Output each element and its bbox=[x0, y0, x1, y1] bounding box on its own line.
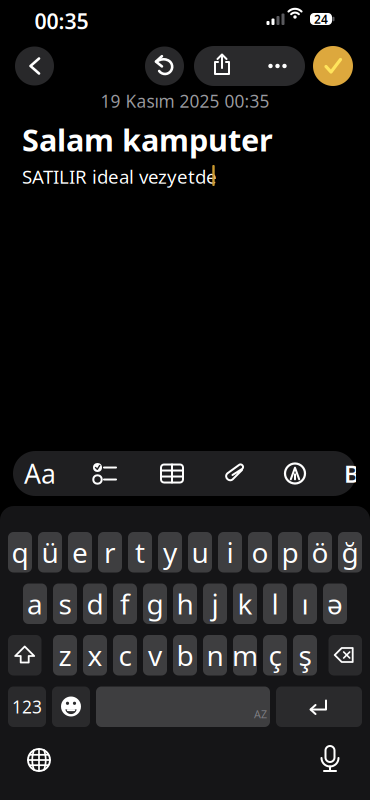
staticText: i bbox=[226, 534, 233, 571]
staticText: p bbox=[281, 534, 298, 571]
button[interactable]: Table bbox=[150, 451, 194, 496]
staticText: s bbox=[58, 585, 71, 622]
staticText: ö bbox=[311, 534, 328, 571]
staticText: 19 Kasım 2025 00:35 bbox=[100, 89, 269, 112]
button[interactable]: q bbox=[8, 532, 32, 572]
staticText: v bbox=[148, 637, 162, 674]
button[interactable]: Emoji bbox=[52, 686, 90, 727]
staticText: r bbox=[104, 534, 116, 571]
button[interactable]: k bbox=[233, 583, 257, 624]
button[interactable]: h bbox=[173, 583, 197, 624]
staticText: ü bbox=[41, 534, 58, 571]
staticText: u bbox=[191, 534, 208, 571]
staticText: ı bbox=[301, 585, 308, 622]
staticText: y bbox=[163, 534, 177, 571]
staticText: m bbox=[232, 637, 258, 674]
button[interactable]: n bbox=[203, 635, 227, 675]
button[interactable]: Delete bbox=[328, 635, 362, 675]
button[interactable]: p bbox=[278, 532, 302, 572]
button[interactable]: ə bbox=[323, 583, 347, 624]
staticText: j bbox=[211, 585, 218, 622]
button[interactable]: Aa bbox=[18, 451, 62, 496]
staticText: a bbox=[27, 585, 43, 622]
staticText: g bbox=[146, 585, 163, 622]
staticText: z bbox=[58, 637, 71, 674]
staticText: 00:35 bbox=[34, 7, 88, 35]
staticText: n bbox=[206, 637, 223, 674]
button[interactable]: i bbox=[218, 532, 242, 572]
staticText: k bbox=[237, 585, 252, 622]
button[interactable]: 123 bbox=[8, 686, 46, 727]
button[interactable]: s bbox=[53, 583, 77, 624]
button[interactable]: Done bbox=[313, 46, 353, 86]
staticText: ş bbox=[298, 637, 311, 674]
button[interactable]: Next keyboard bbox=[0, 0, 40, 40]
button[interactable]: ı bbox=[293, 583, 317, 624]
button[interactable]: Back bbox=[15, 46, 54, 85]
button[interactable]: b bbox=[173, 635, 197, 675]
staticText: SATILIR ideal vezyetde bbox=[22, 164, 217, 189]
button[interactable]: ö bbox=[308, 532, 332, 572]
button[interactable]: f bbox=[113, 583, 137, 624]
staticText: c bbox=[118, 637, 131, 674]
staticText: e bbox=[72, 534, 88, 571]
staticText: t bbox=[135, 534, 145, 571]
staticText: h bbox=[176, 585, 193, 622]
button[interactable]: ç bbox=[263, 635, 287, 675]
button[interactable]: Shift bbox=[8, 635, 41, 675]
staticText: l bbox=[271, 585, 278, 622]
staticText: f bbox=[120, 585, 130, 622]
button[interactable]: Undo bbox=[145, 46, 184, 85]
staticText: o bbox=[251, 534, 268, 571]
button[interactable]: m bbox=[233, 635, 257, 675]
button[interactable]: More bbox=[251, 46, 303, 86]
button[interactable]: d bbox=[83, 583, 107, 624]
button[interactable]: z bbox=[53, 635, 77, 675]
staticText: 24 bbox=[314, 11, 328, 27]
button[interactable]: j bbox=[203, 583, 227, 624]
staticText: 123 bbox=[12, 695, 42, 718]
button[interactable]: l bbox=[263, 583, 287, 624]
staticText: ç bbox=[268, 637, 281, 674]
button[interactable]: c bbox=[113, 635, 137, 675]
button[interactable]: Checklist bbox=[83, 451, 127, 496]
button[interactable]: r bbox=[98, 532, 122, 572]
button[interactable]: a bbox=[23, 583, 47, 624]
staticText: B bbox=[344, 458, 360, 489]
staticText: Aa bbox=[24, 456, 56, 491]
button[interactable]: Dictation bbox=[0, 0, 40, 40]
button[interactable]: ş bbox=[293, 635, 317, 675]
button[interactable]: Attach bbox=[212, 451, 256, 496]
button[interactable]: t bbox=[128, 532, 152, 572]
staticText: ğ bbox=[341, 534, 358, 571]
staticText: AZ bbox=[254, 707, 267, 721]
staticText: Salam kamputer bbox=[22, 119, 273, 160]
button[interactable]: x bbox=[83, 635, 107, 675]
button[interactable]: Return bbox=[276, 686, 362, 727]
button[interactable]: y bbox=[158, 532, 182, 572]
button[interactable]: Space bbox=[96, 686, 270, 727]
button[interactable]: ü bbox=[38, 532, 62, 572]
button[interactable]: o bbox=[248, 532, 272, 572]
button[interactable]: e bbox=[68, 532, 92, 572]
button[interactable]: ğ bbox=[338, 532, 362, 572]
button[interactable]: v bbox=[143, 635, 167, 675]
staticText: d bbox=[86, 585, 103, 622]
button[interactable]: u bbox=[188, 532, 212, 572]
staticText: b bbox=[176, 637, 193, 674]
button[interactable]: Share bbox=[195, 46, 247, 86]
staticText: q bbox=[11, 534, 28, 571]
button[interactable]: g bbox=[143, 583, 167, 624]
staticText: x bbox=[87, 637, 102, 674]
staticText: ə bbox=[327, 585, 343, 622]
button[interactable]: Markup bbox=[273, 451, 317, 496]
